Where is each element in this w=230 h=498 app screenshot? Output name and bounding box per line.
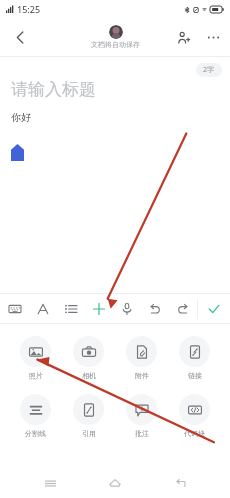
button[interactable]: Insert <box>85 294 113 323</box>
button[interactable]: 2字 <box>196 63 222 77</box>
staticText: 请输入标题 <box>11 79 96 100</box>
staticText: 分割线 <box>25 429 46 438</box>
staticText: 你好 <box>11 111 31 124</box>
button[interactable]: Font <box>29 294 57 323</box>
button[interactable]: Home <box>100 468 130 498</box>
button[interactable]: 附件 <box>124 336 159 380</box>
button[interactable]: 相机 <box>71 336 106 380</box>
button[interactable]: Add member <box>168 22 198 52</box>
button[interactable]: More options <box>198 22 228 52</box>
button[interactable]: Back <box>165 468 195 498</box>
button[interactable]: Recents <box>35 468 65 498</box>
button[interactable]: 链接 <box>177 336 212 380</box>
button[interactable]: 批注 <box>124 394 159 438</box>
staticText: 代码块 <box>184 429 205 438</box>
staticText: 照片 <box>29 371 43 380</box>
button[interactable]: Undo <box>141 294 169 323</box>
staticText: 15:25 <box>17 3 41 15</box>
staticText: 附件 <box>135 371 149 380</box>
button[interactable]: Voice <box>113 294 141 323</box>
staticText: 相机 <box>82 371 96 380</box>
button[interactable]: 照片 <box>18 336 53 380</box>
staticText: 2字 <box>203 65 215 75</box>
staticText: 引用 <box>82 429 96 438</box>
staticText: 链接 <box>188 371 202 380</box>
staticText: 文档将自动保存 <box>91 40 140 49</box>
staticText: 批注 <box>135 429 149 438</box>
button[interactable]: Back <box>3 20 37 54</box>
button[interactable]: 文档将自动保存 <box>91 25 140 49</box>
button[interactable]: List <box>57 294 85 323</box>
button[interactable]: 代码块 <box>177 394 212 438</box>
button[interactable]: Keyboard <box>0 294 29 323</box>
button[interactable]: Done <box>198 294 230 323</box>
button[interactable]: 分割线 <box>18 394 53 438</box>
button[interactable]: 引用 <box>71 394 106 438</box>
button[interactable]: Redo <box>169 294 197 323</box>
